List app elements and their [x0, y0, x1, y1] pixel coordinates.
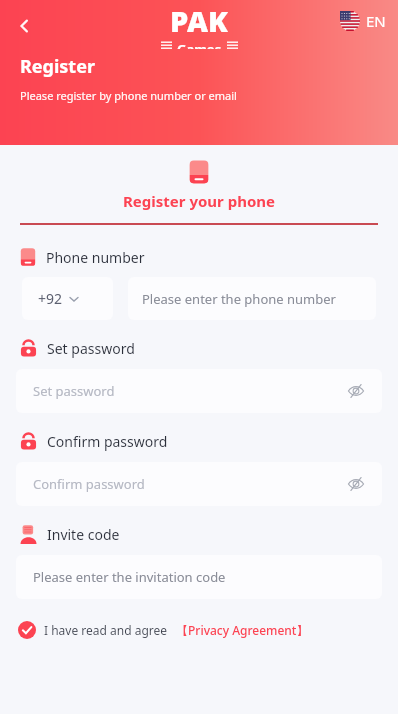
staticText: I have read and agree [44, 622, 168, 638]
staticText: Phone number [46, 248, 145, 267]
staticText: Please enter the phone number [142, 290, 336, 308]
staticText: Set password [33, 382, 115, 400]
button[interactable]: Confirm password [16, 462, 382, 506]
button[interactable]: +92 [22, 277, 113, 320]
staticText: PAK [170, 1, 228, 40]
button[interactable]: Show password [344, 472, 368, 496]
staticText: Confirm password [33, 475, 145, 493]
button[interactable]: 【Privacy Agreement】 [176, 622, 309, 638]
button[interactable]: Back [6, 8, 42, 44]
button[interactable]: Set password [16, 369, 382, 413]
staticText: Please register by phone number or email [20, 88, 237, 103]
staticText: Invite code [47, 525, 120, 544]
staticText: Confirm password [47, 432, 168, 451]
staticText: 【Privacy Agreement】 [176, 622, 309, 638]
staticText: Register your phone [0, 191, 398, 211]
button[interactable]: I have read and agree [18, 621, 309, 639]
staticText: EN [366, 11, 386, 31]
button[interactable]: EN [336, 9, 390, 33]
staticText: Register [20, 54, 95, 79]
staticText: Games [177, 40, 222, 49]
button[interactable]: Show password [344, 379, 368, 403]
button[interactable]: Please enter the invitation code [16, 555, 382, 599]
staticText: Set password [47, 339, 135, 358]
staticText: Please enter the invitation code [33, 568, 226, 586]
button[interactable]: Please enter the phone number [128, 277, 376, 320]
staticText: +92 [38, 289, 63, 308]
